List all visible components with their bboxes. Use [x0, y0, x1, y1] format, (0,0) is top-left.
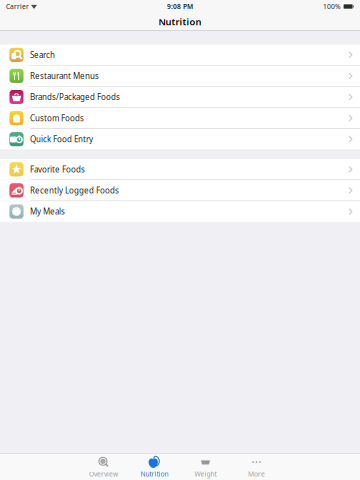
staticText: Restaurant Menus [30, 71, 99, 81]
staticText: 9:08 PM [167, 2, 193, 11]
staticText: Recently Logged Foods [30, 185, 119, 196]
button[interactable]: Overview [78, 454, 129, 480]
button[interactable]: Custom Foods [0, 108, 360, 128]
button[interactable]: My Meals [0, 201, 360, 222]
button[interactable]: Quick Food Entry [0, 129, 360, 149]
button[interactable]: Weight [180, 454, 231, 480]
button[interactable]: Recently Logged Foods [0, 180, 360, 201]
staticText: Search [30, 49, 55, 60]
button[interactable]: More [231, 454, 282, 480]
button[interactable]: Brands/Packaged Foods [0, 87, 360, 107]
staticText: Custom Foods [30, 113, 84, 123]
staticText: 100% [323, 2, 341, 11]
staticText: Brands/Packaged Foods [30, 92, 120, 102]
staticText: Quick Food Entry [30, 134, 93, 144]
staticText: Favorite Foods [30, 164, 85, 175]
staticText: Nutrition [140, 470, 168, 478]
button[interactable]: Favorite Foods [0, 159, 360, 180]
button[interactable]: Restaurant Menus [0, 66, 360, 86]
staticText: My Meals [30, 206, 65, 217]
staticText: Overview [89, 470, 118, 478]
button[interactable]: Search [0, 44, 360, 65]
staticText: Nutrition [158, 16, 201, 28]
button[interactable]: Nutrition [129, 454, 180, 480]
staticText: Carrier [6, 2, 29, 11]
staticText: More [248, 470, 265, 478]
staticText: Weight [194, 470, 216, 478]
